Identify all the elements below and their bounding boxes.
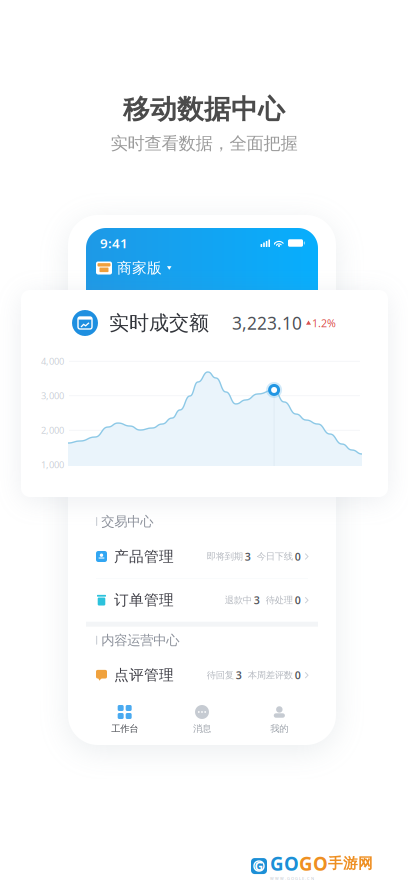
- staticText: 3,000: [41, 390, 64, 402]
- staticText: 内容运营中心: [101, 632, 179, 648]
- staticText: 工作台: [111, 723, 138, 734]
- staticText: 0: [295, 593, 301, 607]
- staticText: 交易中心: [101, 513, 153, 530]
- staticText: 实时成交额: [109, 311, 209, 335]
- staticText: 订单管理: [114, 591, 174, 609]
- staticText: 4,000: [41, 355, 64, 367]
- button[interactable]: 我的: [241, 704, 318, 734]
- staticText: 1.2%: [312, 316, 336, 330]
- button[interactable]: 工作台: [86, 704, 163, 734]
- staticText: 商家版: [117, 259, 162, 277]
- button[interactable]: 订单管理: [86, 579, 318, 622]
- staticText: 手游网: [328, 854, 373, 872]
- staticText: 1,000: [41, 459, 64, 471]
- staticText: 产品管理: [114, 547, 174, 565]
- staticText: 9:41: [100, 234, 128, 252]
- staticText: 点评管理: [114, 666, 174, 684]
- staticText: 3: [245, 549, 251, 564]
- staticText: 消息: [193, 723, 211, 734]
- staticText: 2,000: [41, 424, 64, 436]
- staticText: 移动数据中心: [123, 93, 285, 126]
- staticText: 0: [295, 668, 301, 682]
- staticText: 3,223.10: [232, 311, 302, 334]
- staticText: 今日下线: [257, 551, 293, 562]
- staticText: GO: [299, 851, 328, 876]
- staticText: 0: [295, 549, 301, 564]
- staticText: 待处理: [266, 594, 293, 606]
- staticText: G: [254, 858, 263, 874]
- staticText: W W W . G O G L E . C N: [270, 876, 314, 881]
- staticText: 我的: [270, 723, 288, 734]
- staticText: 本周差评数: [248, 669, 293, 681]
- staticText: 实时查看数据，全面把握: [110, 133, 297, 154]
- staticText: GO: [270, 851, 299, 876]
- staticText: 待回复: [207, 669, 234, 681]
- staticText: 3: [236, 668, 242, 682]
- staticText: 3: [254, 593, 260, 607]
- button[interactable]: 产品管理: [86, 535, 318, 578]
- staticText: 即将到期: [207, 551, 243, 562]
- staticText: 退款中: [225, 594, 252, 606]
- button[interactable]: 点评管理: [86, 654, 318, 697]
- button[interactable]: 消息: [163, 704, 241, 734]
